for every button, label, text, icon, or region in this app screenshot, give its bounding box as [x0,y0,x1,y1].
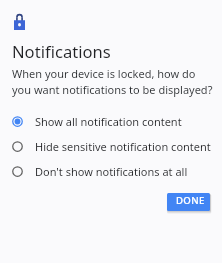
button[interactable]: Hide sensitive notification content [0,134,222,159]
button[interactable]: Show all notification content [0,109,222,134]
staticText: Don't show notifications at all [35,164,188,179]
button[interactable]: Don't show notifications at all [0,159,222,184]
staticText: When your device is locked, how do you w… [12,66,214,98]
staticText: Notifications [12,40,111,63]
staticText: Show all notification content [35,114,182,129]
staticText: DONE [176,194,205,207]
staticText: Hide sensitive notification content [35,139,211,154]
other: Lock [14,14,25,30]
button[interactable]: DONE [167,193,210,211]
